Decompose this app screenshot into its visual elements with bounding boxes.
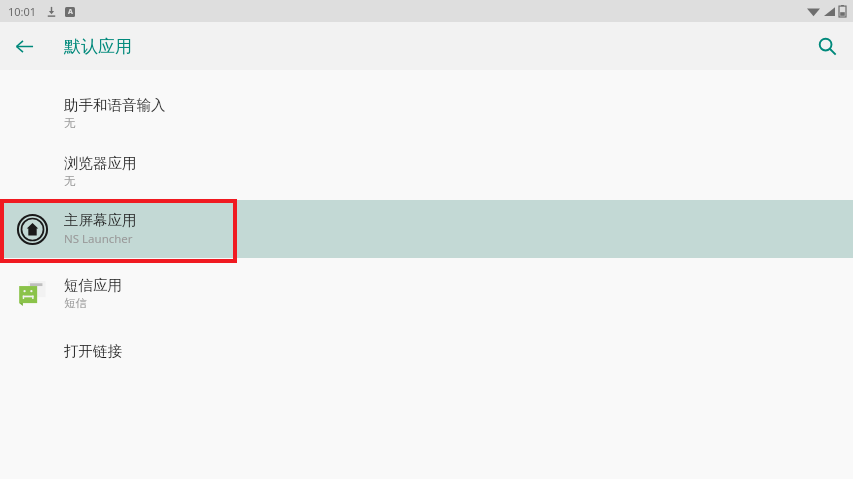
staticText: 短信 [64,296,87,310]
staticText: A [68,7,73,17]
staticText: 无 [64,174,76,188]
button[interactable]: 助手和语音输入 [0,84,853,142]
button[interactable]: Back [6,28,42,64]
staticText: 10:01 [8,4,37,19]
staticText: 默认应用 [64,36,132,57]
staticText: 浏览器应用 [64,154,137,172]
staticText: 主屏幕应用 [64,211,137,229]
staticText: NS Launcher [64,231,133,247]
button[interactable]: 浏览器应用 [0,142,853,200]
button[interactable]: 主屏幕应用 [0,200,853,258]
staticText: 短信应用 [64,276,122,294]
button[interactable]: 打开链接 [0,322,853,380]
staticText: 无 [64,116,76,130]
staticText: 助手和语音输入 [64,96,166,114]
button[interactable]: Search [807,26,847,66]
staticText: 打开链接 [64,342,122,360]
button[interactable]: 短信应用 [0,264,853,322]
